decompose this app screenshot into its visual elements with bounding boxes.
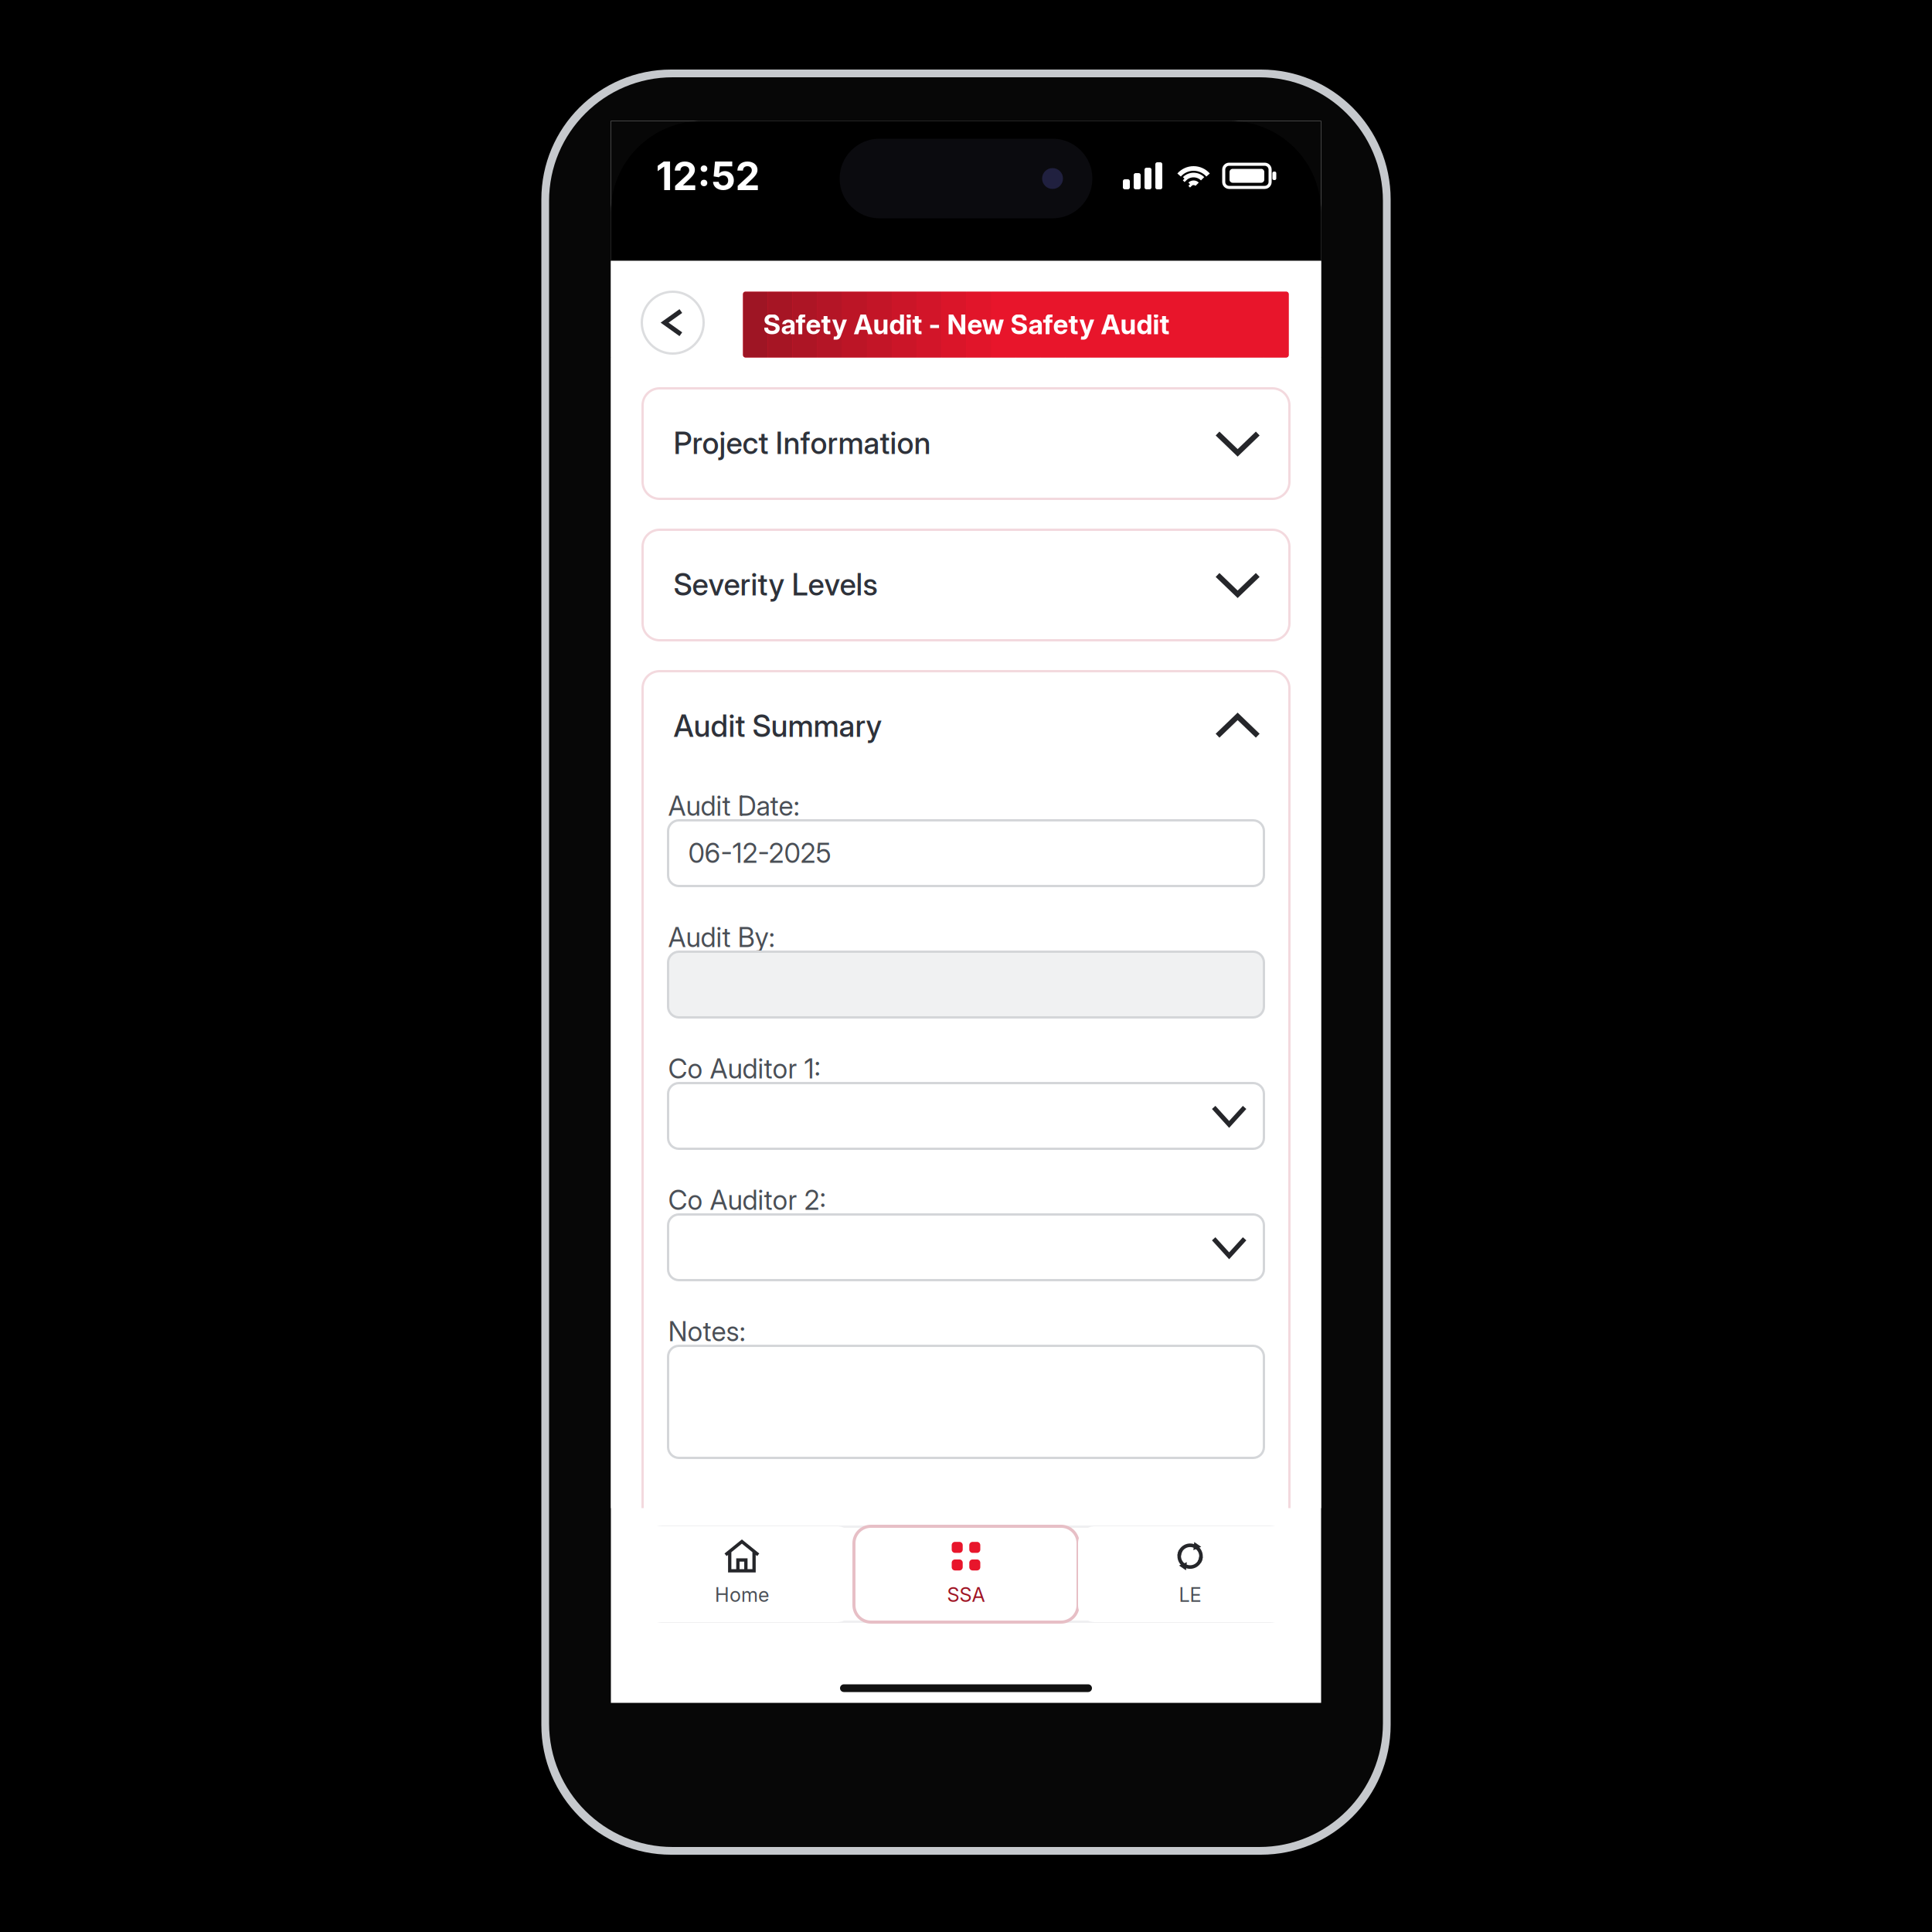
staticText: Safety Audit - New Safety Audit	[763, 308, 1170, 341]
staticText: Notes:	[668, 1315, 745, 1348]
button[interactable]: Home	[630, 1526, 854, 1622]
staticText: Audit Summary	[673, 708, 882, 744]
button[interactable]: Project Information	[643, 388, 1289, 499]
button[interactable]: Severity Levels	[643, 530, 1289, 640]
staticText: Project Information	[673, 425, 931, 461]
button[interactable]: LE	[1078, 1526, 1302, 1622]
button[interactable]: SSA	[854, 1526, 1078, 1622]
staticText: Co Auditor 2:	[668, 1184, 826, 1216]
button[interactable]: Back	[642, 292, 704, 354]
button[interactable]: Audit Summary	[643, 671, 1289, 781]
staticText: Severity Levels	[673, 567, 878, 603]
staticText: Audit By:	[668, 921, 775, 954]
staticText: Home	[715, 1583, 769, 1607]
staticText: 12:52	[656, 152, 760, 199]
staticText: Co Auditor 1:	[668, 1053, 820, 1085]
staticText: Audit Date:	[668, 790, 799, 822]
staticText: SSA	[947, 1583, 985, 1607]
staticText: LE	[1179, 1583, 1201, 1607]
staticText: 06-12-2025	[688, 837, 831, 869]
